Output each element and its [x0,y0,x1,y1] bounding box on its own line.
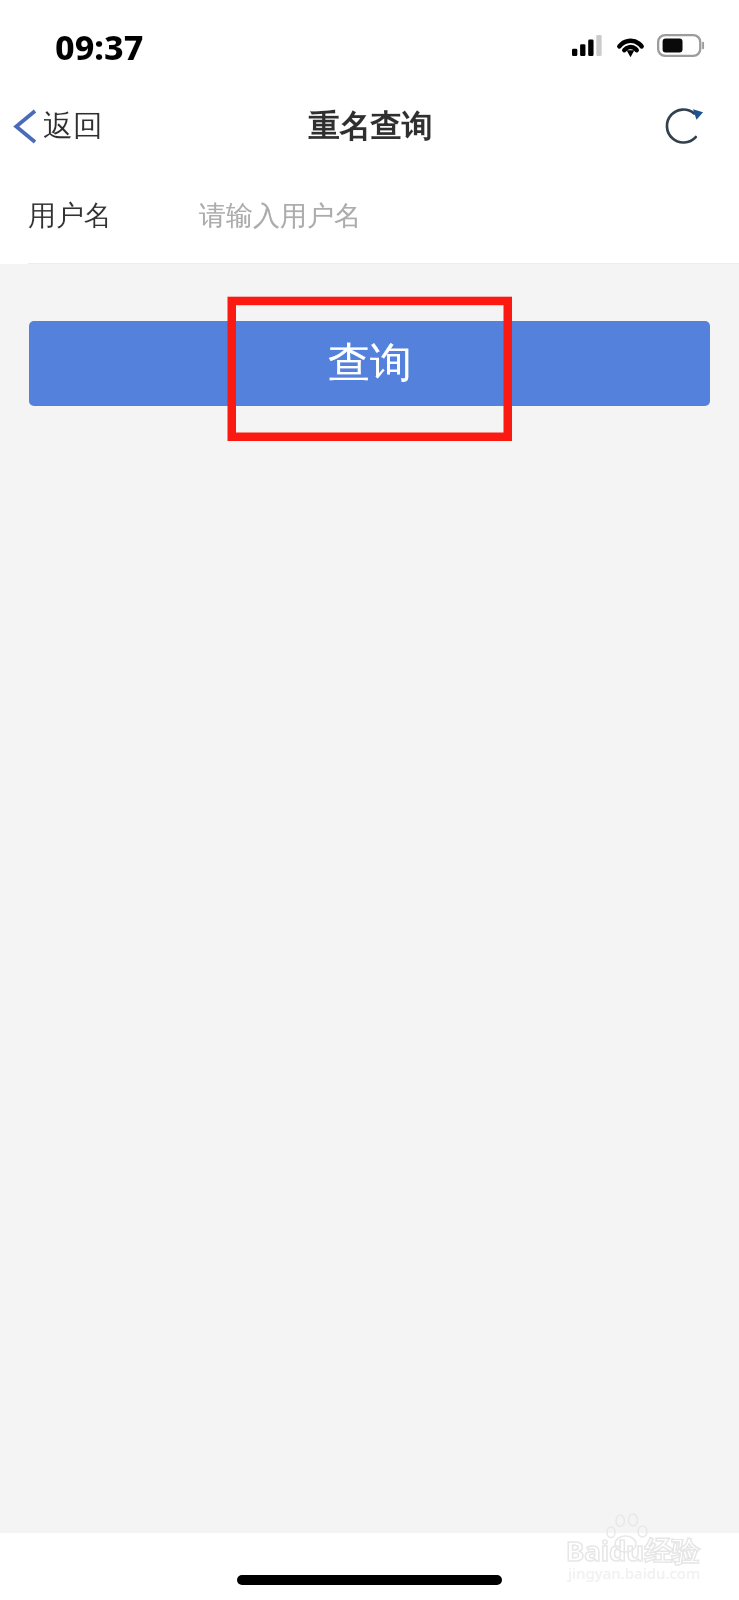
staticText: 请输入用户名 [199,199,361,233]
staticText: jingyan.baidu.com [568,1563,701,1583]
staticText: 用户名 [28,198,112,233]
staticText: 09:37 [55,24,144,70]
staticText: 查询 [328,337,412,390]
button[interactable]: Refresh [657,98,713,154]
staticText: 返回 [43,107,103,145]
button[interactable]: 返回 [14,107,103,145]
button[interactable]: 用户名 [0,173,739,264]
staticText: 重名查询 [308,107,432,146]
staticText: Baidu经验 [566,1532,700,1570]
button[interactable]: 查询 [29,321,710,406]
